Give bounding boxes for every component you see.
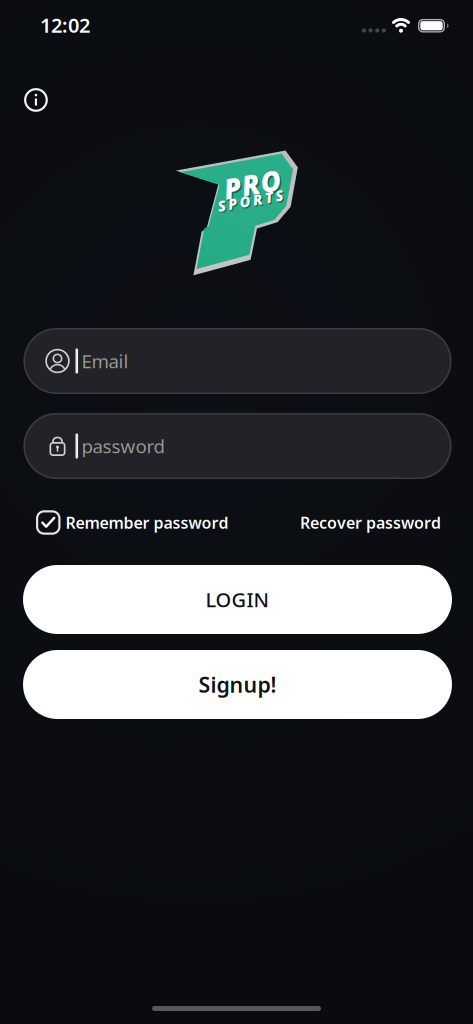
button[interactable]: Recover password [300,512,441,533]
staticText: PRO [223,165,281,203]
staticText: SPORTS [217,191,284,210]
button[interactable]: Info [24,88,48,112]
staticText: Email [82,349,129,373]
staticText: LOGIN [205,586,269,613]
button[interactable]: Remember password [36,510,228,535]
button[interactable]: LOGIN [23,565,452,634]
staticText: Signup! [198,670,276,699]
staticText: SPORTS [218,192,285,211]
staticText: Remember password [65,512,228,533]
staticText: PRO [225,167,283,204]
staticText: password [82,434,165,458]
textField[interactable]: Email [82,349,435,373]
staticText: Recover password [300,512,441,533]
staticText: 12:02 [40,12,90,38]
secureTextField[interactable]: password [82,434,435,458]
button[interactable]: Signup! [23,650,452,719]
